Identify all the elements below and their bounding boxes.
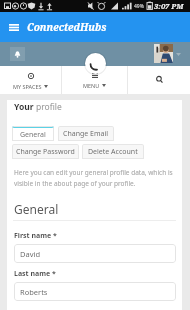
staticText: Delete Account: [88, 147, 138, 157]
staticText: Here you can edit your general profile d…: [14, 168, 173, 177]
button[interactable]: David: [14, 244, 176, 263]
button[interactable]: Change Password: [12, 144, 79, 159]
staticText: 3:07 PM: [154, 1, 184, 11]
button[interactable]: Open navigation menu: [4, 17, 24, 37]
staticText: visible in the about page of your profil…: [14, 179, 136, 188]
staticText: Change Email: [63, 129, 109, 139]
staticText: Your: [14, 101, 36, 113]
button[interactable]: MY SPACES: [0, 66, 61, 94]
staticText: ConnectedHubs: [27, 20, 107, 34]
button[interactable]: Profile: [154, 44, 173, 63]
staticText: David: [20, 249, 41, 259]
button[interactable]: Notifications: [10, 47, 25, 61]
staticText: Change Password: [16, 147, 75, 157]
button[interactable]: Roberts: [14, 282, 176, 301]
button[interactable]: Search: [128, 66, 190, 94]
staticText: General: [14, 201, 59, 217]
staticText: profile: [36, 101, 62, 113]
staticText: Last name *: [14, 269, 56, 279]
button[interactable]: MENU: [62, 66, 127, 94]
staticText: First name *: [14, 231, 57, 241]
staticText: 49%: [134, 3, 144, 10]
staticText: Roberts: [20, 287, 48, 297]
button[interactable]: Call: [85, 53, 106, 74]
button[interactable]: Change Email: [58, 126, 114, 141]
staticText: MY SPACES: [13, 83, 42, 90]
button[interactable]: General: [12, 126, 54, 141]
staticText: General: [20, 130, 46, 140]
staticText: MENU: [83, 82, 100, 89]
button[interactable]: Delete Account: [82, 144, 144, 159]
